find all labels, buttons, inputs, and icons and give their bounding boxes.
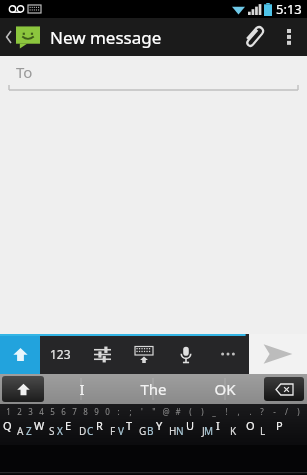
- button[interactable]: 123: [40, 334, 81, 374]
- staticText: To: [16, 62, 33, 82]
- button[interactable]: Shift: [2, 376, 44, 402]
- button[interactable]: 0: [102, 404, 113, 419]
- staticText: Q: [3, 418, 12, 433]
- button[interactable]: Y: [155, 419, 185, 445]
- staticText: 4: [39, 406, 44, 417]
- button[interactable]: P: [275, 419, 305, 445]
- button[interactable]: @: [160, 404, 172, 419]
- button[interactable]: The: [117, 374, 189, 404]
- button[interactable]: 8: [80, 404, 91, 419]
- staticText: G: [139, 424, 147, 438]
- staticText: .: [249, 406, 252, 417]
- button[interactable]: Voice input: [165, 334, 207, 374]
- staticText: I: [79, 379, 85, 399]
- button[interactable]: I: [215, 419, 245, 445]
- button[interactable]: Send: [249, 334, 307, 374]
- staticText: I: [216, 418, 220, 433]
- button[interactable]: 1: [3, 404, 14, 419]
- staticText: ?: [260, 406, 264, 417]
- button[interactable]: :: [113, 404, 124, 419]
- button[interactable]: 9: [91, 404, 102, 419]
- button[interactable]: !: [220, 404, 232, 419]
- staticText: L: [260, 424, 266, 438]
- staticText: New message: [50, 26, 162, 49]
- button[interactable]: U: [185, 419, 215, 445]
- staticText: W: [34, 418, 45, 433]
- button[interactable]: Shift: [0, 334, 40, 374]
- button[interactable]: ;: [124, 404, 136, 419]
- staticText: M: [204, 424, 214, 438]
- button[interactable]: More: [207, 334, 249, 374]
- staticText: X: [57, 424, 63, 438]
- staticText: 2: [17, 406, 22, 417]
- button[interactable]: 5: [47, 404, 58, 419]
- staticText: ,: [237, 406, 240, 417]
- button[interactable]: ,: [232, 404, 244, 419]
- button[interactable]: Switch keyboard: [123, 334, 165, 374]
- staticText: ): [297, 406, 300, 417]
- button[interactable]: O: [245, 419, 275, 445]
- button[interactable]: 4: [36, 404, 47, 419]
- button[interactable]: #: [172, 404, 184, 419]
- button[interactable]: -: [268, 404, 280, 419]
- button[interactable]: 7: [69, 404, 80, 419]
- staticText: V: [118, 424, 124, 438]
- button[interactable]: ": [148, 404, 160, 419]
- staticText: The: [140, 379, 167, 399]
- staticText: 123: [50, 346, 71, 362]
- staticText: Y: [156, 418, 163, 433]
- staticText: ;: [129, 406, 132, 417]
- staticText: P: [276, 418, 283, 433]
- button[interactable]: Navigate up: [0, 21, 42, 53]
- button[interactable]: Q: [2, 419, 33, 445]
- button[interactable]: R: [95, 419, 125, 445]
- button[interactable]: Attach: [231, 18, 275, 56]
- button[interactable]: .: [244, 404, 256, 419]
- staticText: 6: [61, 406, 66, 417]
- staticText: A: [17, 424, 24, 438]
- staticText: 7: [72, 406, 77, 417]
- staticText: R: [96, 418, 103, 433]
- staticText: 5: [50, 406, 55, 417]
- staticText: :: [117, 406, 120, 417]
- button[interactable]: Delete: [264, 377, 304, 401]
- staticText: C: [87, 424, 94, 438]
- staticText: T: [126, 418, 133, 433]
- button[interactable]: /: [280, 404, 292, 419]
- staticText: ): [201, 406, 204, 417]
- button[interactable]: ): [196, 404, 208, 419]
- staticText: _: [212, 406, 216, 417]
- staticText: F: [110, 424, 116, 438]
- button[interactable]: ?: [256, 404, 268, 419]
- staticText: H: [169, 424, 177, 438]
- staticText: 5:13: [276, 0, 302, 18]
- staticText: E: [65, 418, 72, 433]
- staticText: S: [49, 424, 55, 438]
- staticText: /: [285, 406, 288, 417]
- button[interactable]: W: [33, 419, 64, 445]
- button[interactable]: OK: [189, 374, 261, 404]
- staticText: Z: [26, 424, 32, 438]
- button[interactable]: 6: [58, 404, 69, 419]
- button[interactable]: To: [0, 56, 307, 92]
- button[interactable]: 3: [25, 404, 36, 419]
- button[interactable]: (: [184, 404, 196, 419]
- button[interactable]: ): [292, 404, 304, 419]
- button[interactable]: Settings: [81, 334, 123, 374]
- staticText: @: [162, 406, 170, 417]
- staticText: #: [175, 406, 181, 417]
- button[interactable]: T: [125, 419, 155, 445]
- staticText: ': [141, 406, 143, 417]
- staticText: 1: [6, 406, 11, 417]
- staticText: O: [246, 418, 255, 433]
- button[interactable]: 2: [14, 404, 25, 419]
- button[interactable]: I: [46, 374, 117, 404]
- staticText: 3: [28, 406, 33, 417]
- button[interactable]: More options: [275, 18, 303, 56]
- staticText: J: [202, 424, 205, 438]
- staticText: (: [189, 406, 192, 417]
- staticText: 0: [105, 406, 110, 417]
- button[interactable]: ': [136, 404, 148, 419]
- button[interactable]: _: [208, 404, 220, 419]
- button[interactable]: E: [64, 419, 95, 445]
